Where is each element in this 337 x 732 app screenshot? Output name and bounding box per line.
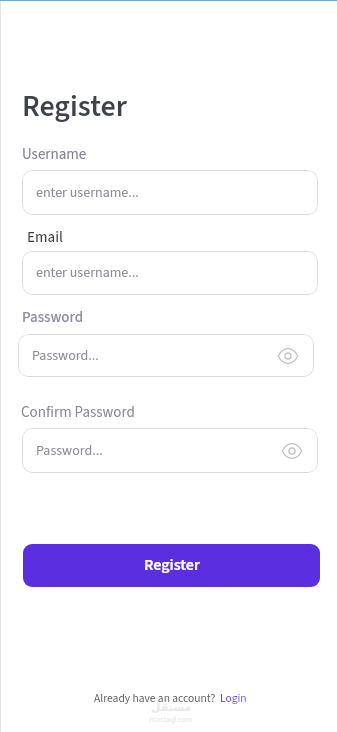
staticText: Confirm Password <box>21 402 135 423</box>
button[interactable]: Register <box>23 544 320 587</box>
button[interactable]: enter username... <box>22 170 318 215</box>
button[interactable]: Show password <box>275 343 301 369</box>
staticText: Email <box>27 227 63 248</box>
staticText: Register <box>22 85 127 128</box>
staticText: Already have an account? <box>94 690 216 706</box>
staticText: Password <box>22 307 84 328</box>
button[interactable]: Login <box>220 690 247 706</box>
staticText: Register <box>144 554 200 577</box>
staticText: مستقل <box>151 701 192 714</box>
staticText: Password... <box>36 441 103 461</box>
button[interactable]: Password... <box>18 334 314 377</box>
button[interactable]: Password... <box>22 428 318 473</box>
button[interactable]: enter username... <box>22 251 318 295</box>
button[interactable]: Show password <box>279 438 305 464</box>
staticText: enter username... <box>36 263 139 283</box>
staticText: enter username... <box>36 183 139 203</box>
staticText: Password... <box>32 346 99 366</box>
staticText: Username <box>22 144 87 165</box>
staticText: mostaql.com <box>149 714 193 725</box>
